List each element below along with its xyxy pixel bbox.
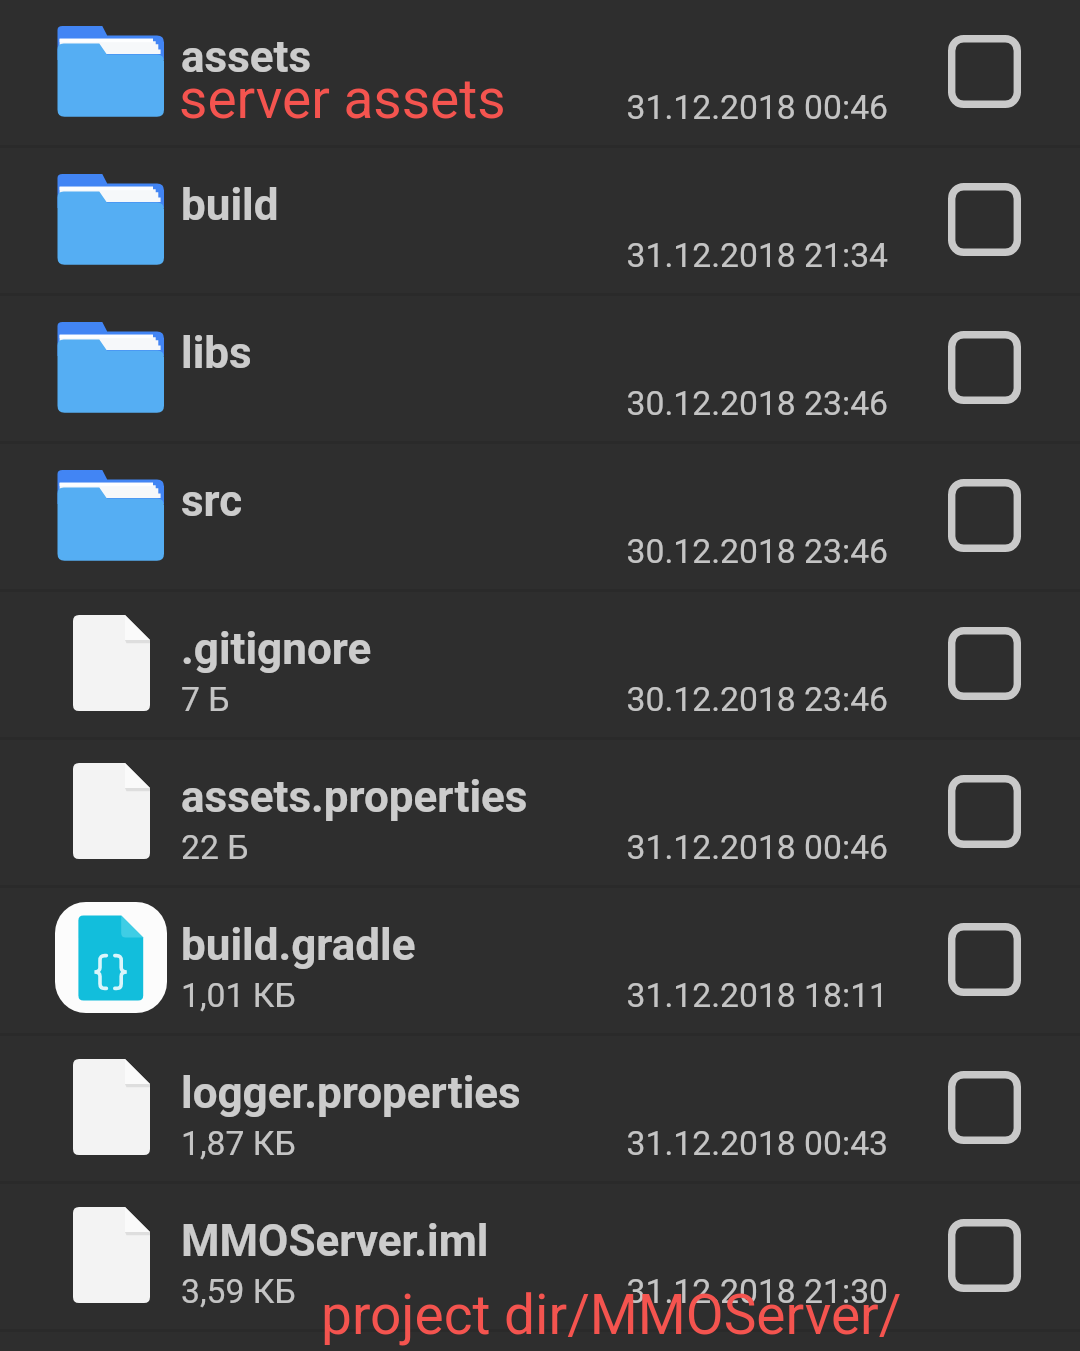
staticText: 30.12.2018 23:46 xyxy=(588,532,888,571)
staticText: 30.12.2018 23:46 xyxy=(588,680,888,719)
staticText: 1,87 КБ xyxy=(181,1124,296,1163)
staticText: MMOServer.iml xyxy=(181,1215,489,1267)
staticText: 31.12.2018 00:46 xyxy=(588,88,888,127)
button[interactable]: build.gradle xyxy=(0,885,1080,1033)
staticText: assets xyxy=(181,31,312,83)
button[interactable]: Select build xyxy=(948,183,1021,256)
staticText: build xyxy=(181,179,279,231)
staticText: 31.12.2018 00:46 xyxy=(588,828,888,867)
staticText: server assets xyxy=(179,67,506,131)
staticText: 30.12.2018 23:46 xyxy=(588,384,888,423)
staticText: 7 Б xyxy=(181,680,230,719)
button[interactable]: assets xyxy=(0,0,1080,145)
staticText: assets.properties xyxy=(181,771,528,823)
staticText: .gitignore xyxy=(181,623,372,675)
button[interactable]: Select libs xyxy=(948,331,1021,404)
button[interactable]: assets.properties xyxy=(0,737,1080,885)
staticText: 31.12.2018 18:11 xyxy=(588,976,888,1015)
staticText: 22 Б xyxy=(181,828,249,867)
button[interactable]: Select assets.properties xyxy=(948,775,1021,848)
staticText: build.gradle xyxy=(181,919,416,971)
button[interactable]: Select assets xyxy=(948,35,1021,108)
button[interactable]: .gitignore xyxy=(0,589,1080,737)
button[interactable]: build xyxy=(0,145,1080,293)
button[interactable]: logger.properties xyxy=(0,1033,1080,1181)
staticText: libs xyxy=(181,327,252,379)
button[interactable]: Select .gitignore xyxy=(948,627,1021,700)
button[interactable]: Select logger.properties xyxy=(948,1071,1021,1144)
button[interactable]: Select MMOServer.iml xyxy=(948,1219,1021,1292)
staticText: 31.12.2018 00:43 xyxy=(588,1124,888,1163)
button[interactable]: Select build.gradle xyxy=(948,923,1021,996)
button[interactable]: MMOServer.iml xyxy=(0,1181,1080,1329)
staticText: 31.12.2018 21:34 xyxy=(588,236,888,275)
staticText: 31.12.2018 21:30 xyxy=(588,1272,888,1311)
staticText: 1,01 КБ xyxy=(181,976,296,1015)
button[interactable]: Select src xyxy=(948,479,1021,552)
staticText: src xyxy=(181,475,243,527)
staticText: 3,59 КБ xyxy=(181,1272,296,1311)
staticText: project dir/MMOServer/ xyxy=(321,1283,902,1347)
button[interactable]: libs xyxy=(0,293,1080,441)
staticText: logger.properties xyxy=(181,1067,521,1119)
button[interactable]: src xyxy=(0,441,1080,589)
